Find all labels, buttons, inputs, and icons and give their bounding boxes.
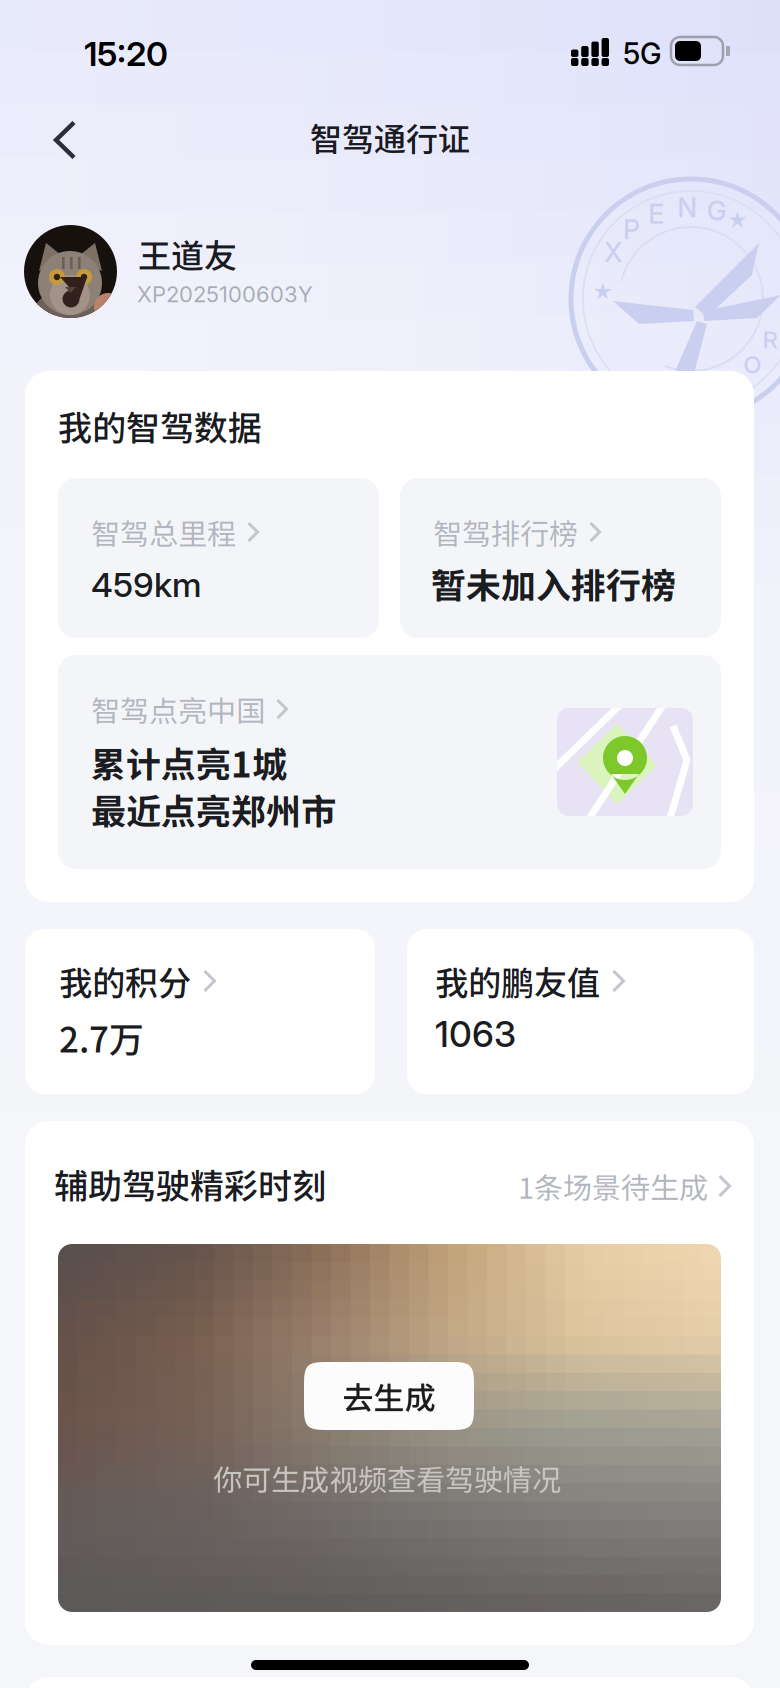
staticText: 你可生成视频查看驾驶情况: [213, 1457, 561, 1499]
staticText: XP2025100603Y: [137, 281, 313, 308]
button[interactable]: 去生成: [304, 1362, 474, 1430]
staticText: 459km: [91, 564, 201, 605]
staticText: 5G: [623, 36, 662, 71]
staticText: 我的智驾数据: [58, 401, 262, 450]
button[interactable]: 智驾总里程: [58, 478, 379, 638]
staticText: ★: [727, 208, 748, 232]
staticText: 辅助驾驶精彩时刻: [54, 1159, 326, 1208]
staticText: 我的积分: [59, 957, 191, 1005]
button[interactable]: 智驾点亮中国: [58, 655, 721, 869]
button[interactable]: 1条场景待生成: [518, 1168, 753, 1204]
staticText: ★: [592, 280, 613, 304]
button[interactable]: 返回: [30, 105, 100, 175]
staticText: 1条场景待生成: [518, 1165, 708, 1207]
staticText: 智驾排行榜: [433, 511, 578, 553]
staticText: 最近点亮郑州市: [91, 784, 336, 835]
staticText: O: [743, 350, 761, 379]
staticText: 暂未加入排行榜: [431, 558, 676, 609]
staticText: 智驾点亮中国: [91, 688, 265, 730]
staticText: X: [604, 236, 623, 269]
button[interactable]: 我的积分: [25, 929, 375, 1094]
staticText: 2.7万: [59, 1012, 144, 1063]
button[interactable]: 智驾排行榜: [400, 478, 721, 638]
staticText: 我的鹏友值: [435, 957, 600, 1005]
staticText: P: [623, 213, 640, 246]
button[interactable]: 我的鹏友值: [407, 929, 754, 1094]
staticText: 智驾通行证: [310, 114, 470, 160]
staticText: G: [707, 194, 727, 227]
staticText: R: [762, 325, 778, 354]
staticText: 15:20: [84, 33, 168, 74]
staticText: 累计点亮1城: [91, 737, 287, 788]
staticText: E: [648, 198, 664, 230]
staticText: 智驾总里程: [91, 511, 236, 553]
staticText: 王道友: [138, 230, 237, 278]
staticText: N: [677, 191, 697, 224]
staticText: 去生成: [342, 1374, 435, 1418]
staticText: 1063: [435, 1012, 516, 1056]
